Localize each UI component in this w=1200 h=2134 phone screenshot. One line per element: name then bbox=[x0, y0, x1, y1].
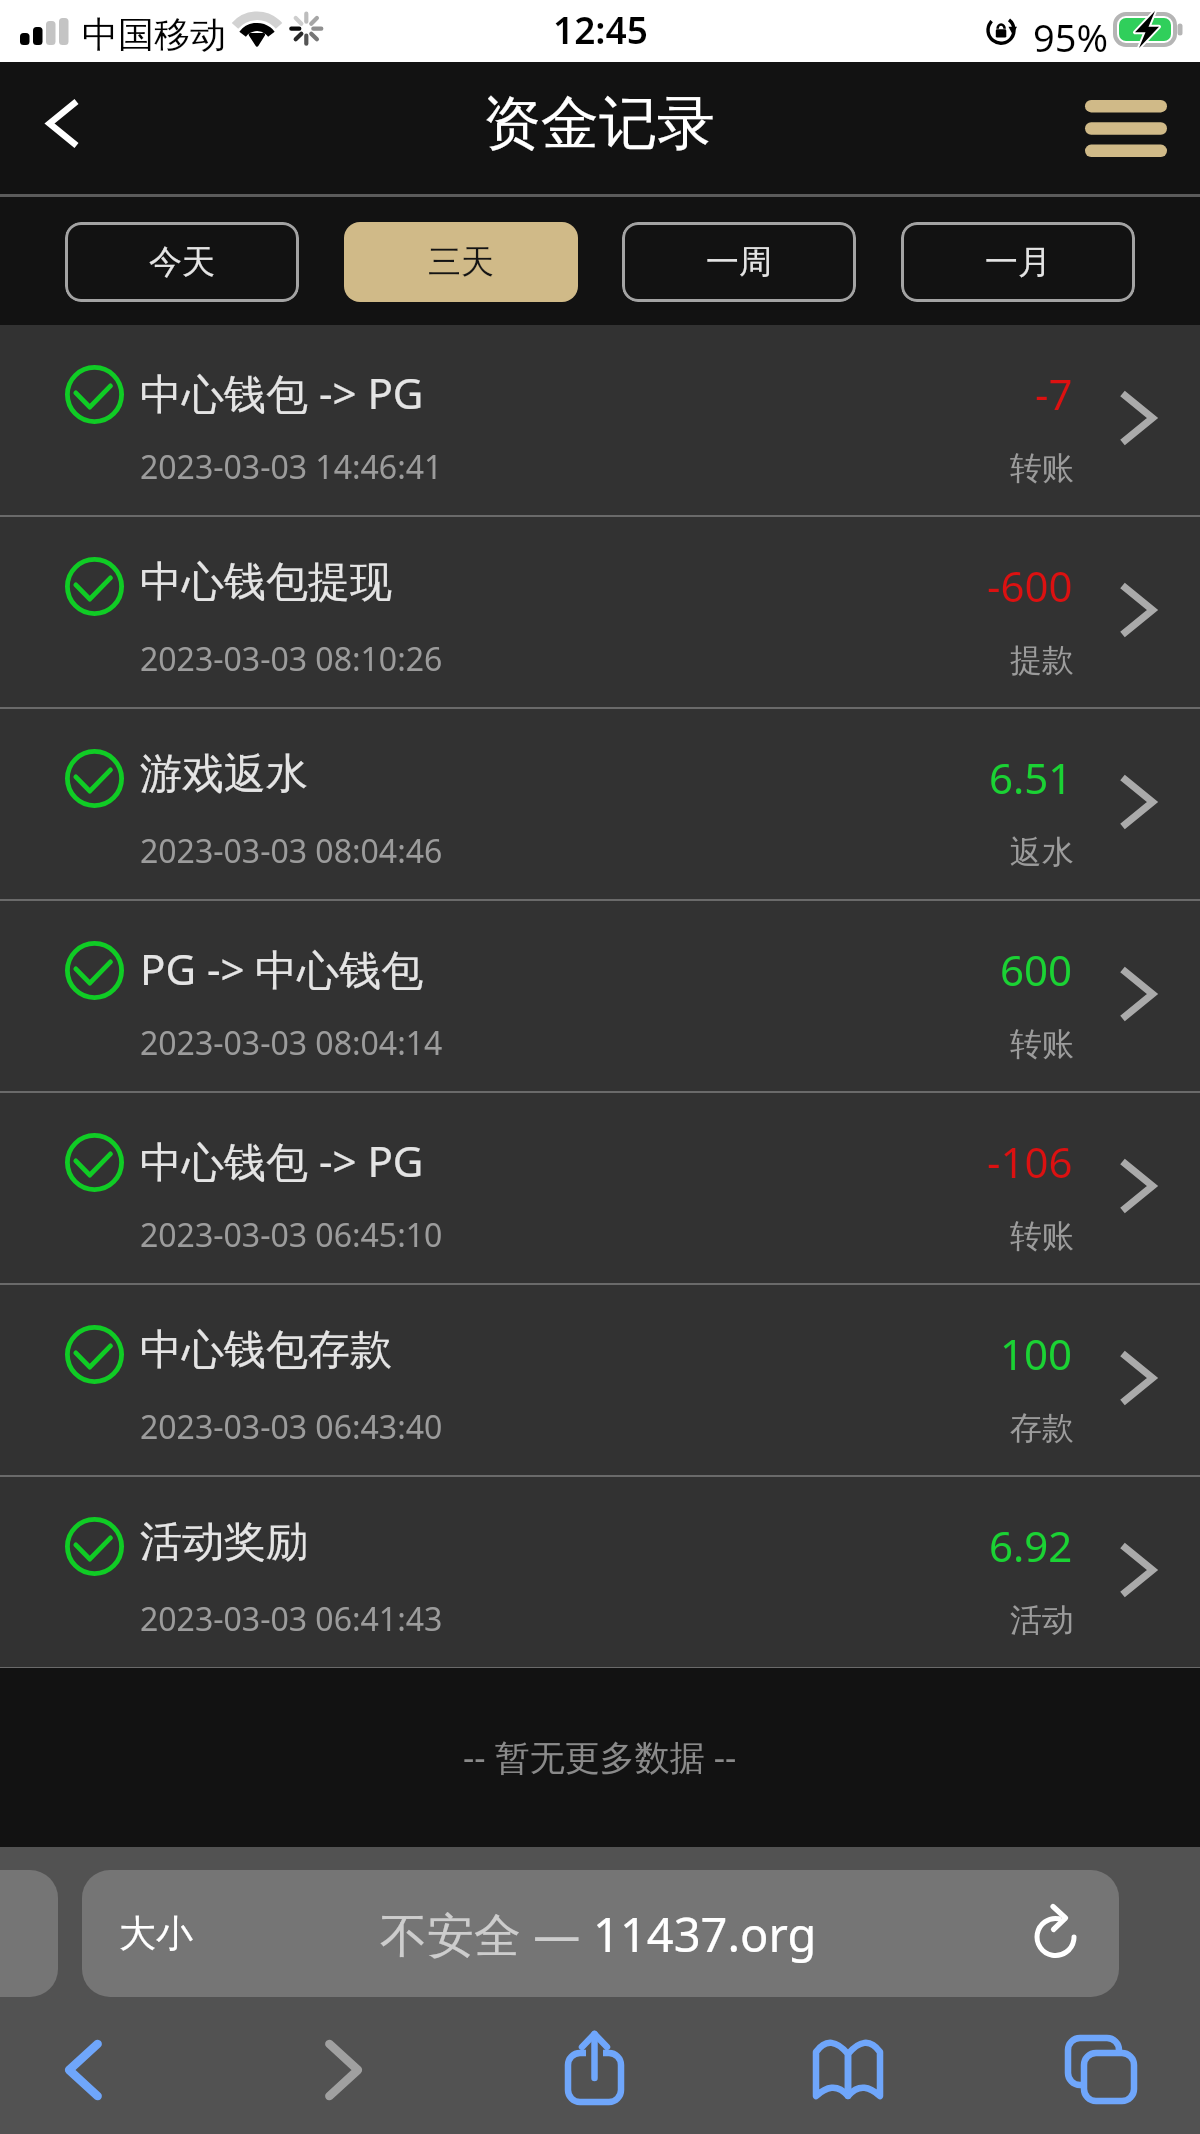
staticText: 转账 bbox=[1010, 1216, 1074, 1256]
staticText: 2023-03-03 06:43:40 bbox=[140, 1405, 443, 1449]
staticText: 不安全 — bbox=[380, 1902, 593, 1966]
button[interactable]: Share bbox=[540, 2015, 650, 2125]
button[interactable]: 中心钱包 -> PG bbox=[0, 1093, 1200, 1283]
staticText: 2023-03-03 14:46:41 bbox=[140, 445, 443, 489]
button[interactable]: 一月 bbox=[901, 222, 1135, 302]
staticText: 转账 bbox=[1010, 448, 1074, 488]
button[interactable]: PG -> 中心钱包 bbox=[0, 901, 1200, 1091]
staticText: 2023-03-03 06:41:43 bbox=[140, 1597, 443, 1641]
staticText: 中国移动 bbox=[82, 12, 226, 57]
staticText: 活动奖励 bbox=[140, 1516, 308, 1569]
button[interactable]: 游戏返水 bbox=[0, 709, 1200, 899]
staticText: 中心钱包存款 bbox=[140, 1324, 392, 1377]
button[interactable]: Bookmarks bbox=[793, 2015, 903, 2125]
button[interactable]: Back bbox=[29, 2015, 139, 2125]
staticText: 大小 bbox=[119, 1910, 193, 1957]
staticText: 返水 bbox=[1010, 832, 1074, 872]
staticText: 中心钱包 -> PG bbox=[140, 1132, 424, 1189]
staticText: 中心钱包 -> PG bbox=[140, 364, 424, 421]
staticText: -- 暂无更多数据 -- bbox=[463, 1733, 737, 1781]
button[interactable]: Forward bbox=[288, 2015, 398, 2125]
staticText: 12:45 bbox=[553, 4, 648, 54]
staticText: 转账 bbox=[1010, 1024, 1074, 1064]
staticText: 今天 bbox=[149, 241, 215, 283]
staticText: 提款 bbox=[1010, 640, 1074, 680]
staticText: 11437.org bbox=[593, 1902, 817, 1966]
staticText: 一月 bbox=[985, 241, 1051, 283]
button[interactable]: 三天 bbox=[344, 222, 578, 302]
staticText: 2023-03-03 06:45:10 bbox=[140, 1213, 443, 1257]
staticText: 2023-03-03 08:04:14 bbox=[140, 1021, 443, 1065]
staticText: 活动 bbox=[1010, 1600, 1074, 1640]
staticText: 资金记录 bbox=[483, 87, 715, 160]
staticText: PG -> 中心钱包 bbox=[140, 940, 424, 997]
staticText: 存款 bbox=[1010, 1408, 1074, 1448]
button[interactable]: Back bbox=[4, 62, 114, 195]
button[interactable]: 今天 bbox=[65, 222, 299, 302]
staticText: 95% bbox=[1033, 11, 1109, 63]
button[interactable]: 中心钱包存款 bbox=[0, 1285, 1200, 1475]
staticText: 2023-03-03 08:04:46 bbox=[140, 829, 443, 873]
staticText: 6.51 bbox=[989, 749, 1073, 806]
button[interactable]: 大小 bbox=[82, 1870, 1119, 1997]
staticText: 中心钱包提现 bbox=[140, 556, 392, 609]
button[interactable]: Tabs bbox=[1046, 2015, 1156, 2125]
staticText: 6.92 bbox=[989, 1517, 1073, 1574]
staticText: -600 bbox=[987, 557, 1073, 614]
staticText: 一周 bbox=[706, 241, 772, 283]
button[interactable]: 中心钱包提现 bbox=[0, 517, 1200, 707]
staticText: -106 bbox=[987, 1133, 1073, 1190]
button[interactable]: 中心钱包 -> PG bbox=[0, 325, 1200, 515]
button[interactable]: 一周 bbox=[622, 222, 856, 302]
staticText: -7 bbox=[1035, 365, 1073, 422]
button[interactable]: Menu bbox=[1070, 62, 1192, 195]
staticText: 游戏返水 bbox=[140, 748, 308, 801]
staticText: 100 bbox=[1000, 1325, 1073, 1382]
staticText: 600 bbox=[1000, 941, 1073, 998]
staticText: 2023-03-03 08:10:26 bbox=[140, 637, 443, 681]
staticText: 三天 bbox=[428, 241, 494, 283]
button[interactable]: 活动奖励 bbox=[0, 1477, 1200, 1667]
